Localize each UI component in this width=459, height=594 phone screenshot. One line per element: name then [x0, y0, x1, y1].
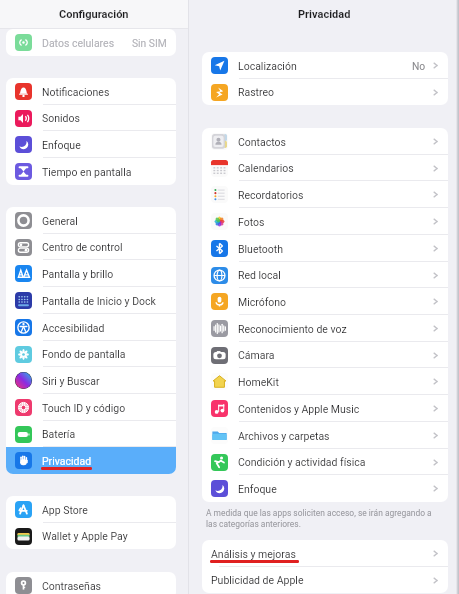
button[interactable]: Touch ID y código [6, 394, 176, 421]
staticText: Batería [42, 428, 76, 440]
button[interactable]: App Store [6, 496, 176, 523]
staticText: Centro de control [42, 241, 123, 253]
staticText: Touch ID y código [42, 402, 126, 414]
staticText: Archivos y carpetas [238, 430, 330, 442]
button[interactable]: Notificaciones [6, 78, 176, 105]
button[interactable]: Bluetooth [202, 235, 448, 262]
staticText: Contenidos y Apple Music [238, 403, 360, 415]
staticText: Publicidad de Apple [211, 574, 304, 586]
staticText: Siri y Buscar [42, 375, 100, 387]
button[interactable]: General [6, 207, 176, 234]
button[interactable]: Calendarios [202, 155, 448, 181]
staticText: Sin SIM [132, 37, 167, 49]
button[interactable]: Centro de control [6, 234, 176, 260]
staticText: Tiempo en pantalla [42, 166, 132, 178]
button[interactable]: Datos celulares [6, 29, 176, 56]
button[interactable]: Contenidos y Apple Music [202, 395, 448, 422]
staticText: Wallet y Apple Pay [42, 530, 128, 542]
button[interactable]: Enfoque [6, 131, 176, 158]
staticText: No [412, 60, 426, 72]
button[interactable]: Cámara [202, 342, 448, 368]
staticText: App Store [42, 504, 88, 516]
staticText: Bluetooth [238, 243, 283, 255]
staticText: Datos celulares [42, 37, 115, 49]
button[interactable]: Condición y actividad física [202, 449, 448, 475]
staticText: Rastreo [238, 86, 275, 98]
staticText: Contactos [238, 136, 287, 148]
staticText: Análisis y mejoras [211, 548, 296, 560]
staticText: Configuración [59, 8, 129, 21]
button[interactable]: Contactos [202, 128, 448, 155]
button[interactable]: Reconocimiento de voz [202, 315, 448, 342]
button[interactable]: Fondo de pantalla [6, 341, 176, 367]
button[interactable]: Privacidad [6, 447, 176, 474]
button[interactable]: Micrófono [202, 288, 448, 315]
staticText: Micrófono [238, 296, 287, 308]
button[interactable]: Pantalla y brillo [6, 260, 176, 287]
staticText: HomeKit [238, 376, 279, 388]
button[interactable]: Fotos [202, 208, 448, 235]
button[interactable]: Pantalla de Inicio y Dock [6, 287, 176, 314]
staticText: Localización [238, 60, 297, 72]
staticText: A medida que las apps soliciten acceso, … [206, 508, 442, 529]
button[interactable]: Rastreo [202, 79, 448, 105]
staticText: Cámara [238, 349, 275, 361]
button[interactable]: Accesibilidad [6, 314, 176, 341]
button[interactable]: Localización [202, 52, 448, 79]
button[interactable]: Archivos y carpetas [202, 422, 448, 449]
staticText: General [42, 215, 78, 227]
button[interactable]: Wallet y Apple Pay [6, 523, 176, 549]
button[interactable]: Enfoque [202, 475, 448, 502]
staticText: Recordatorios [238, 189, 304, 201]
staticText: Red local [238, 269, 281, 281]
button[interactable]: Batería [6, 421, 176, 447]
staticText: Notificaciones [42, 86, 110, 98]
button[interactable]: Tiempo en pantalla [6, 158, 176, 185]
button[interactable]: Recordatorios [202, 181, 448, 208]
staticText: Enfoque [238, 483, 277, 495]
staticText: Condición y actividad física [238, 456, 366, 468]
button[interactable]: Sonidos [6, 105, 176, 131]
button[interactable]: Análisis y mejoras [202, 540, 448, 567]
staticText: Pantalla de Inicio y Dock [42, 295, 156, 307]
button[interactable]: HomeKit [202, 368, 448, 395]
button[interactable]: Contraseñas [6, 572, 176, 594]
staticText: Sonidos [42, 112, 80, 124]
staticText: Privacidad [298, 8, 351, 21]
staticText: Fondo de pantalla [42, 348, 126, 360]
staticText: Enfoque [42, 139, 81, 151]
staticText: Fotos [238, 216, 265, 228]
staticText: Privacidad [42, 455, 92, 467]
staticText: Pantalla y brillo [42, 268, 114, 280]
staticText: Accesibilidad [42, 322, 105, 334]
staticText: Contraseñas [42, 580, 102, 592]
button[interactable]: Publicidad de Apple [202, 567, 448, 593]
staticText: Calendarios [238, 162, 294, 174]
staticText: Reconocimiento de voz [238, 323, 347, 335]
button[interactable]: Red local [202, 262, 448, 288]
button[interactable]: Siri y Buscar [6, 367, 176, 394]
